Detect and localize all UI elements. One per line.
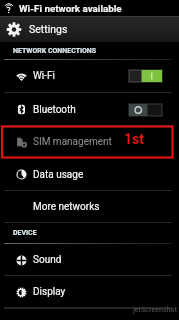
button[interactable]: Sound [0, 244, 179, 276]
staticText: Display [33, 286, 66, 298]
staticText: NETWORK CONNECTIONS [13, 47, 97, 55]
staticText: jetScreenshot [133, 306, 177, 314]
button[interactable]: Wi-Fi [0, 59, 179, 93]
staticText: More networks [33, 201, 100, 213]
staticText: Data usage [33, 169, 84, 181]
button[interactable]: Switch on [129, 70, 162, 82]
staticText: Wi-Fi [33, 70, 56, 82]
staticText: Sound [33, 254, 62, 266]
button[interactable]: Data usage [0, 158, 179, 191]
staticText: Wi-Fi network available [19, 3, 122, 14]
button[interactable]: Display [0, 276, 179, 308]
button[interactable]: More networks [0, 191, 179, 223]
button[interactable]: Settings [0, 16, 179, 42]
staticText: DEVICE [13, 229, 37, 237]
button[interactable]: Switch off [129, 104, 162, 116]
button[interactable]: SIM management [0, 126, 179, 158]
button[interactable]: Bluetooth [0, 93, 179, 126]
staticText: Settings [29, 23, 68, 35]
staticText: 1st [124, 131, 144, 147]
staticText: Bluetooth [33, 104, 76, 116]
staticText: SIM management [33, 136, 112, 148]
